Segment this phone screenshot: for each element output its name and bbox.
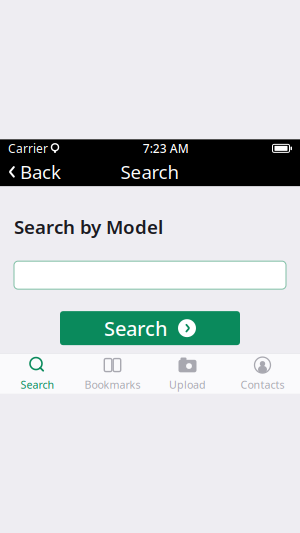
button[interactable]: Bookmarks xyxy=(75,354,150,394)
staticText: Upload xyxy=(169,378,206,392)
button[interactable]: Search xyxy=(0,354,75,394)
staticText: 7:23 AM xyxy=(143,140,189,156)
staticText: Search xyxy=(104,315,168,341)
staticText: Bookmarks xyxy=(84,378,140,392)
staticText: Carrier xyxy=(8,140,48,156)
button[interactable]: Upload xyxy=(150,354,225,394)
staticText: Search xyxy=(120,159,179,184)
button[interactable]: Contacts xyxy=(225,354,300,394)
button[interactable]: Search xyxy=(60,311,240,345)
button[interactable]: Back xyxy=(0,157,69,186)
staticText: Contacts xyxy=(240,378,284,392)
staticText: Search xyxy=(20,378,54,392)
staticText: Search by Model xyxy=(14,214,163,239)
staticText: Back xyxy=(20,159,61,184)
